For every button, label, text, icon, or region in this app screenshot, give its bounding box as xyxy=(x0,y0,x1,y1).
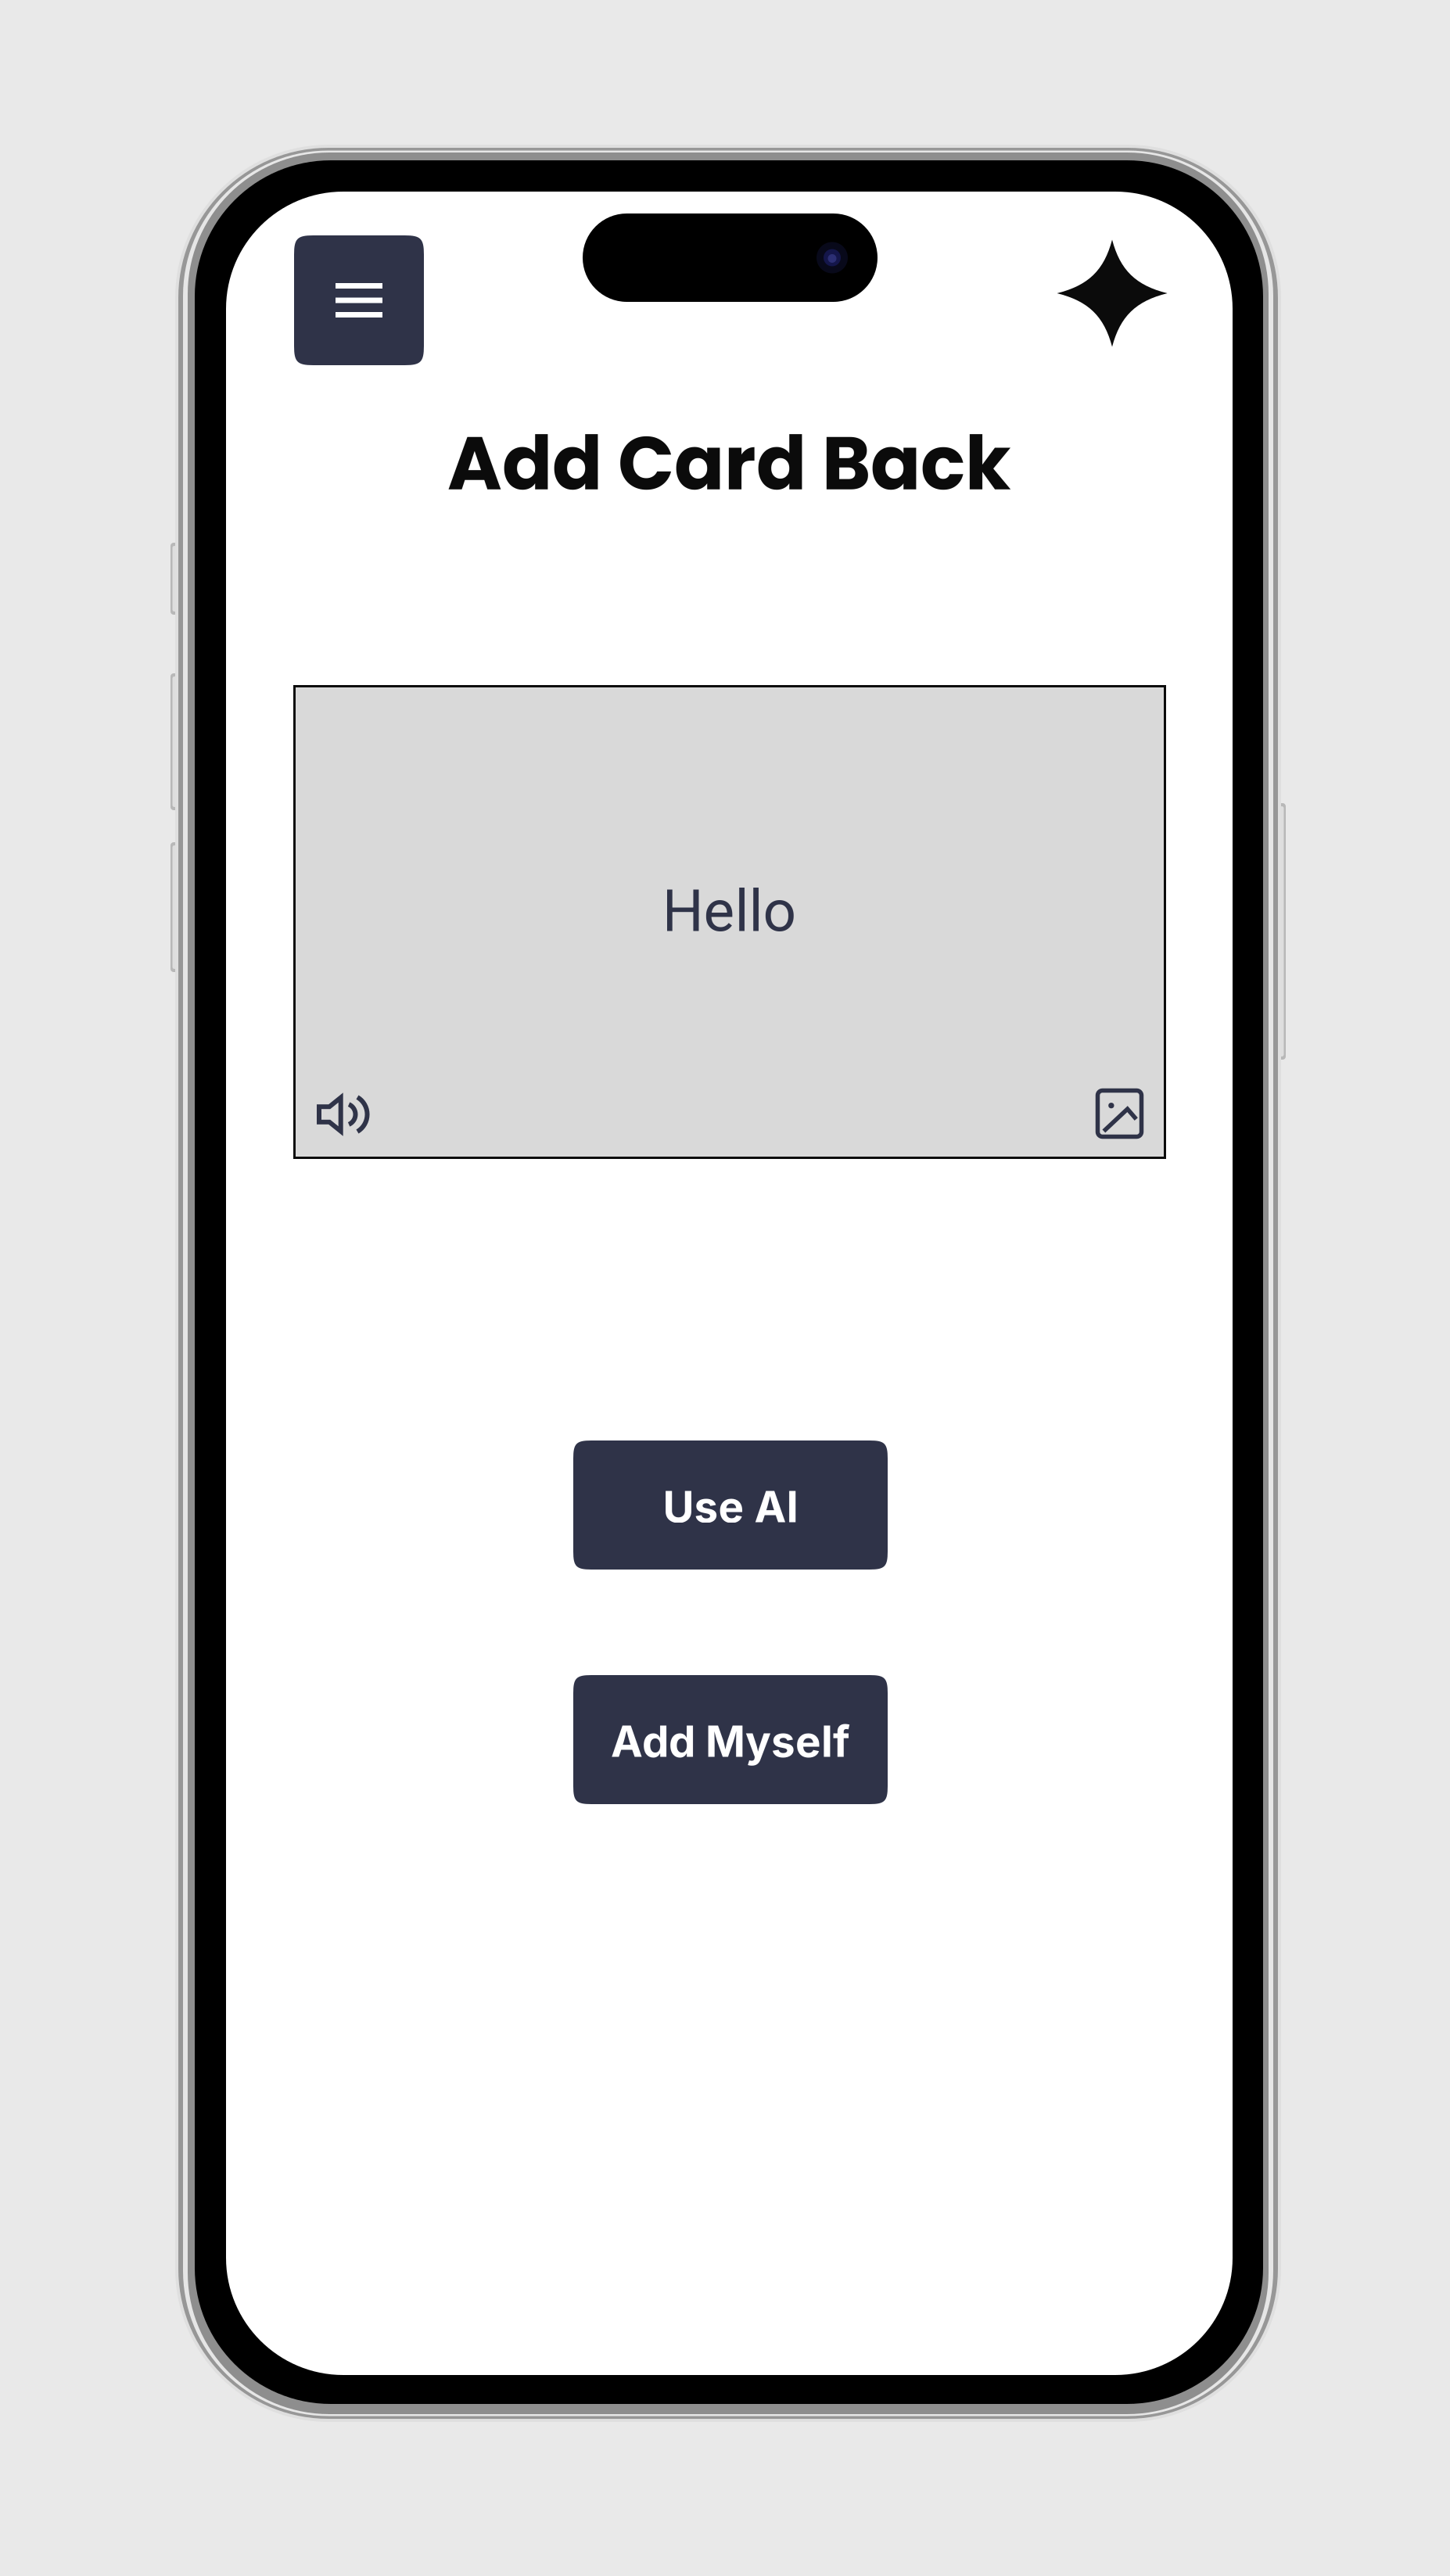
button[interactable]: Generate with AI xyxy=(1043,224,1181,362)
staticText: Hello xyxy=(662,877,797,945)
staticText: Add Card Back xyxy=(447,412,1011,515)
staticText: Add Myself xyxy=(611,1715,850,1767)
button[interactable]: Add image xyxy=(1084,1079,1156,1148)
staticText: Use AI xyxy=(663,1481,798,1532)
button[interactable]: Menu xyxy=(294,235,424,365)
button[interactable]: Play audio xyxy=(305,1081,380,1148)
button[interactable]: Add Myself xyxy=(573,1675,888,1804)
button[interactable]: Use AI xyxy=(573,1440,888,1570)
